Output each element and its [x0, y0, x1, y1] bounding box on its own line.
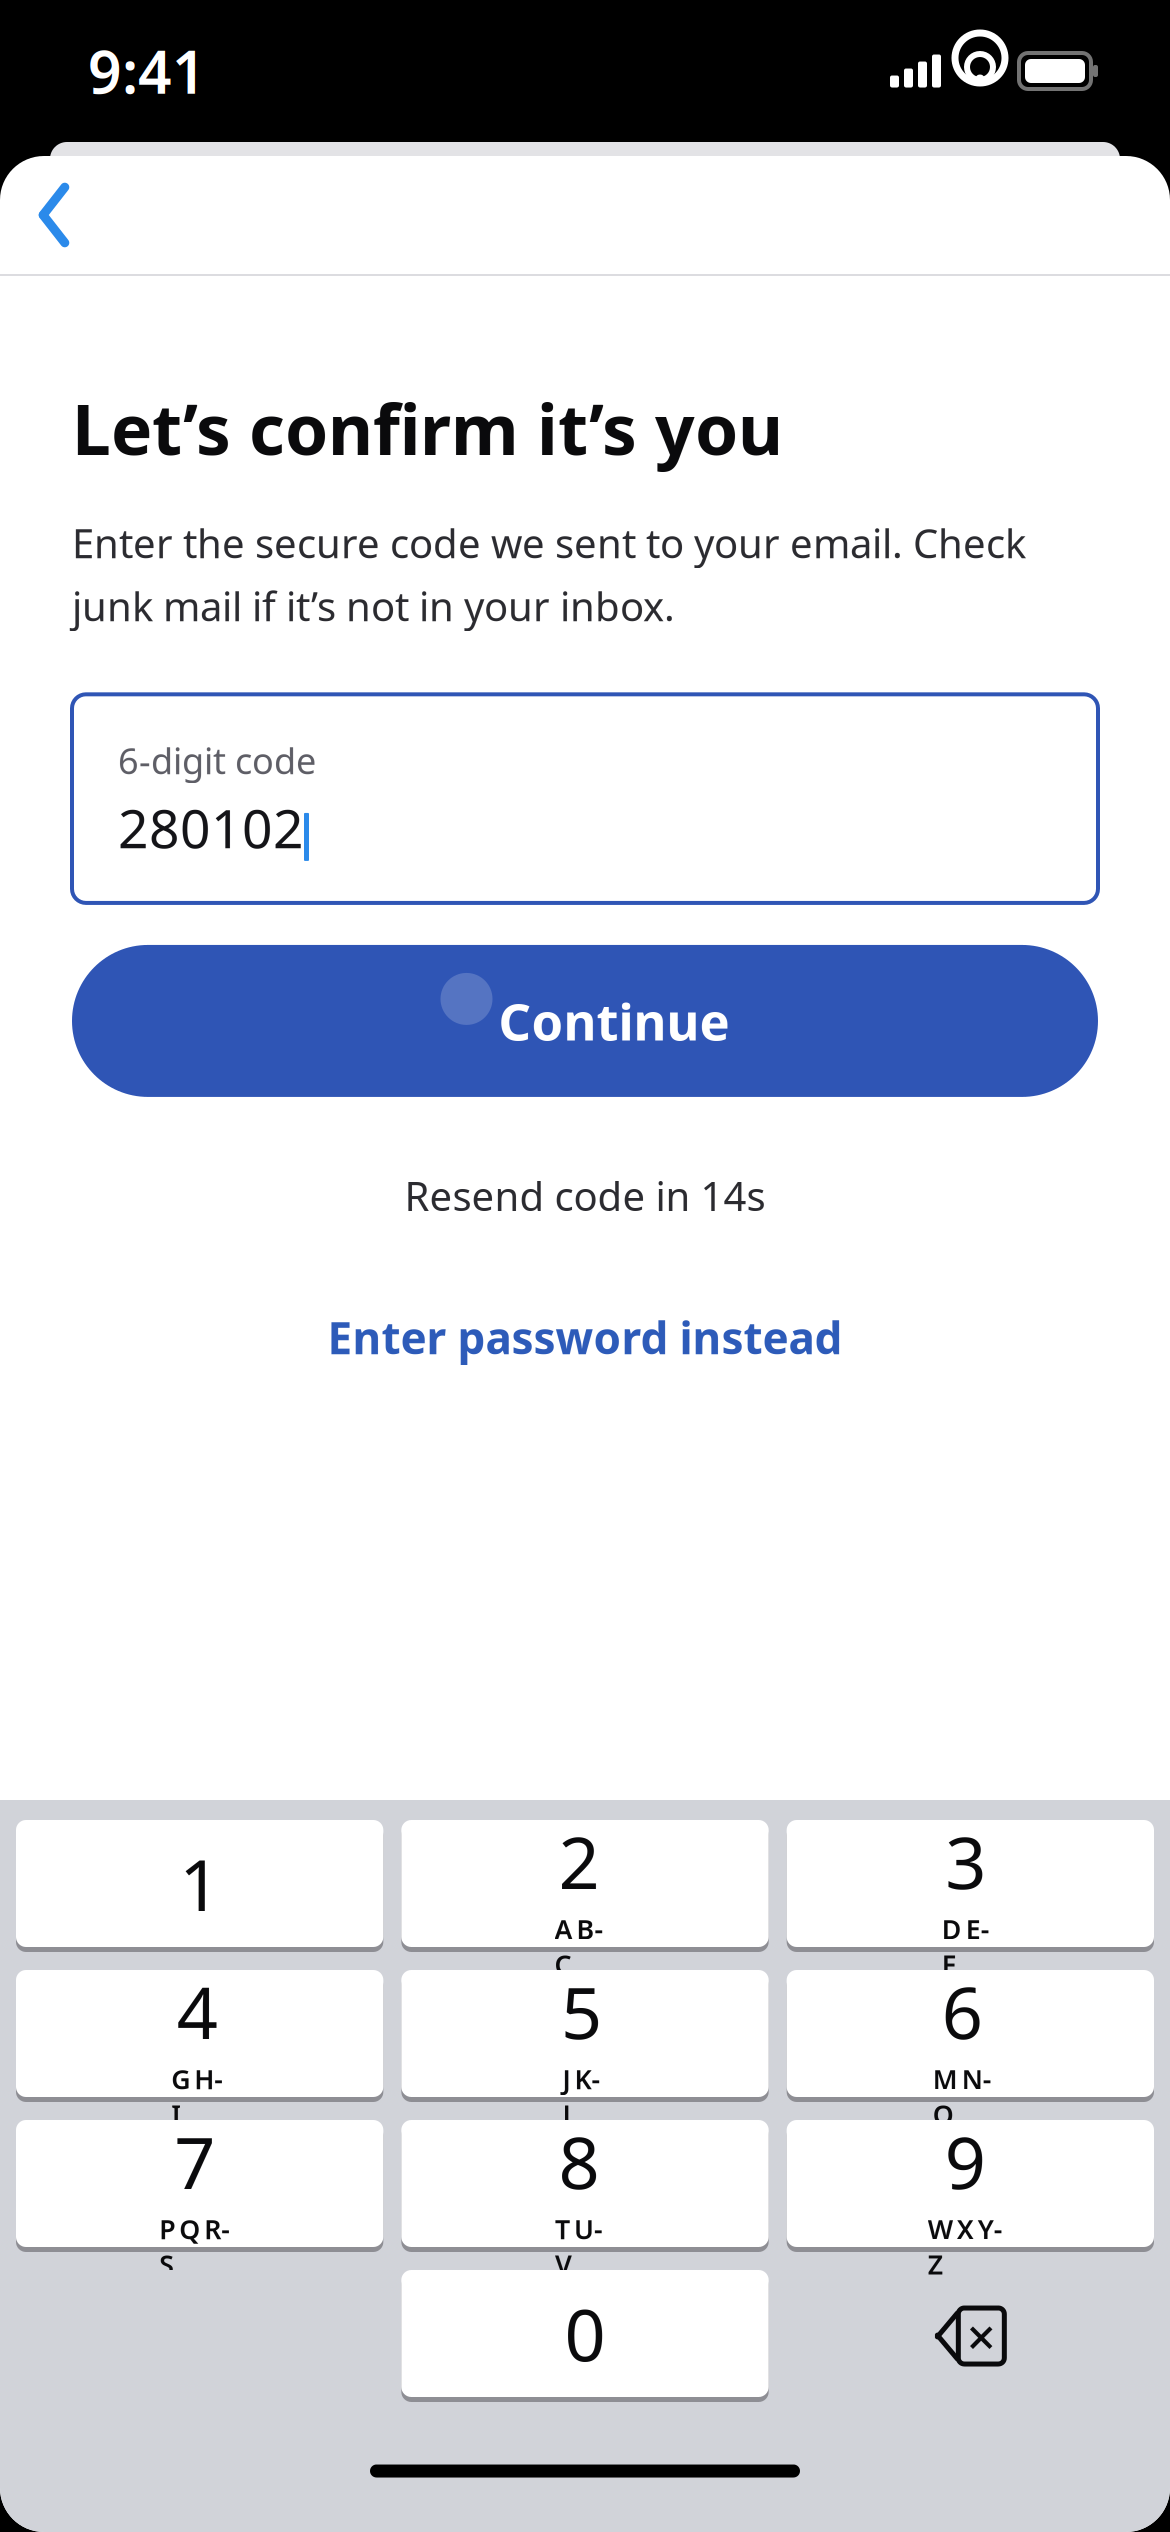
staticText: Let’s confirm it’s you [72, 382, 783, 474]
staticText: MNO [933, 2061, 992, 2132]
button[interactable]: Resend code in 14s [72, 1157, 1098, 1234]
button[interactable]: 6 [787, 1970, 1154, 2102]
staticText: DEF [942, 1911, 990, 1982]
staticText: 9 [945, 2113, 986, 2209]
button[interactable]: 4 [16, 1970, 383, 2102]
staticText: × [967, 2302, 996, 2370]
staticText: 2 [558, 1813, 599, 1909]
staticText: 5 [561, 1963, 602, 2059]
staticText: ABC [554, 1911, 603, 1982]
button[interactable]: Continue [72, 945, 1098, 1097]
staticText: Resend code in 14s [404, 1169, 765, 1222]
staticText: Continue [498, 987, 729, 1055]
button[interactable]: 9 [787, 2120, 1154, 2252]
staticText: JKL [562, 2061, 600, 2132]
staticText: 9:41 [88, 32, 206, 110]
staticText: TUV [555, 2211, 603, 2282]
button[interactable]: 2 [401, 1820, 769, 1952]
staticText: 3 [945, 1813, 986, 1909]
staticText: 8 [558, 2113, 599, 2209]
button[interactable]: 5 [401, 1970, 769, 2102]
button[interactable]: 3 [787, 1820, 1154, 1952]
button[interactable]: Delete [787, 2270, 1154, 2402]
staticText: Enter the secure code we sent to your em… [72, 516, 1026, 632]
staticText: 1 [179, 1836, 220, 1931]
button[interactable]: 0 [401, 2270, 769, 2402]
staticText: 4 [177, 1963, 218, 2059]
staticText: 7 [174, 2113, 215, 2209]
button[interactable]: 8 [401, 2120, 769, 2252]
staticText: WXYZ [928, 2211, 1003, 2282]
button[interactable]: 1 [16, 1820, 383, 1952]
button[interactable]: Enter password instead [72, 1294, 1098, 1380]
button[interactable]: Back [6, 167, 102, 263]
button[interactable]: 7 [16, 2120, 383, 2252]
staticText: PQRS [159, 2211, 230, 2282]
staticText: 6-digit code [118, 736, 316, 784]
staticText: 0 [564, 2286, 605, 2381]
staticText: GHI [171, 2061, 223, 2132]
staticText: 6 [942, 1963, 983, 2059]
staticText: 280102 [118, 792, 304, 863]
staticText: Enter password instead [327, 1308, 842, 1366]
